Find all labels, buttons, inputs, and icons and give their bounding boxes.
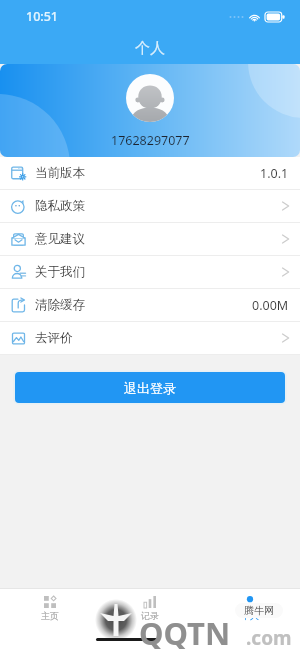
staticText: 主页 bbox=[41, 610, 59, 621]
staticText: 退出登录 bbox=[124, 380, 176, 396]
staticText: 17628297077 bbox=[111, 132, 190, 149]
staticText: 去评价 bbox=[35, 330, 73, 346]
staticText: 当前版本 bbox=[35, 165, 85, 181]
staticText: 0.00M bbox=[252, 297, 289, 314]
staticText: 隐私政策 bbox=[35, 198, 85, 214]
button[interactable]: 记录 bbox=[100, 589, 200, 621]
button[interactable]: 关于我们 bbox=[0, 256, 300, 289]
button[interactable]: 意见建议 bbox=[0, 223, 300, 256]
button[interactable]: 个人 bbox=[200, 589, 300, 621]
staticText: 1.0.1 bbox=[260, 165, 289, 182]
staticText: 意见建议 bbox=[35, 231, 85, 247]
staticText: 记录 bbox=[141, 610, 159, 621]
button[interactable]: 隐私政策 bbox=[0, 190, 300, 223]
staticText: 腾牛网 bbox=[244, 604, 274, 617]
button[interactable]: 退出登录 bbox=[15, 372, 285, 403]
staticText: 个人 bbox=[241, 610, 259, 621]
staticText: QQTN bbox=[139, 612, 231, 649]
staticText: 个人 bbox=[135, 39, 165, 58]
button[interactable]: 清除缓存 bbox=[0, 289, 300, 322]
staticText: 关于我们 bbox=[35, 264, 85, 280]
button[interactable]: 主页 bbox=[0, 589, 100, 621]
staticText: .com bbox=[246, 625, 292, 649]
button[interactable]: 当前版本 bbox=[0, 157, 300, 190]
staticText: 清除缓存 bbox=[35, 297, 85, 313]
staticText: 10:51 bbox=[26, 8, 59, 25]
button[interactable]: 去评价 bbox=[0, 322, 300, 355]
